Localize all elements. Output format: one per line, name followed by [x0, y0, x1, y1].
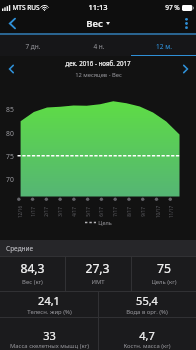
staticText: 4 н.	[93, 42, 105, 51]
staticText: ИМТ	[91, 278, 105, 286]
button[interactable]: 84,3	[0, 257, 65, 291]
button[interactable]: Previous period	[0, 56, 22, 82]
button[interactable]: More options	[176, 14, 196, 33]
staticText: Средние	[6, 244, 34, 253]
staticText: 85	[6, 105, 14, 114]
button[interactable]: 7 дн.	[0, 35, 66, 57]
staticText: 12 месяцев - Вес	[75, 71, 122, 79]
staticText: Цель (кг)	[151, 278, 177, 286]
staticText: дек. 2016 - нояб. 2017	[65, 59, 131, 67]
button[interactable]: Back	[0, 14, 24, 33]
staticText: 6/17	[98, 207, 104, 217]
staticText: 7/17	[112, 207, 118, 217]
staticText: 5/17	[85, 207, 91, 217]
staticText: 80	[6, 129, 14, 138]
staticText: 70	[6, 175, 14, 184]
staticText: Вес	[86, 17, 103, 30]
staticText: 11:13	[88, 2, 108, 12]
staticText: 55,4	[136, 293, 158, 308]
staticText: 10/17	[154, 205, 160, 218]
staticText: 9/17	[140, 207, 146, 217]
button[interactable]: 27,3	[65, 257, 130, 291]
staticText: 11/17	[167, 205, 173, 218]
staticText: 1/17	[30, 207, 36, 217]
button[interactable]: Next period	[174, 56, 196, 82]
staticText: 27,3	[85, 260, 110, 276]
staticText: 97 %	[165, 3, 180, 12]
staticText: 12 м.	[156, 42, 172, 51]
staticText: 24,1	[38, 293, 60, 308]
button[interactable]: 24,1	[0, 291, 98, 317]
staticText: Костн. масса (кг)	[123, 342, 171, 350]
staticText: 7 дн.	[25, 42, 41, 51]
staticText: Телесн. жир (%)	[27, 308, 72, 316]
staticText: 75	[157, 260, 171, 276]
button[interactable]: 55,4	[98, 291, 196, 317]
staticText: Масса скелетных мышц (кг)	[10, 342, 89, 350]
staticText: 4,7	[139, 328, 155, 343]
staticText: 3/17	[57, 207, 63, 217]
button[interactable]: Вес	[86, 17, 110, 30]
staticText: 33	[43, 328, 56, 343]
staticText: Вес (кг)	[22, 278, 43, 286]
button[interactable]: 4,7	[98, 317, 196, 350]
staticText: 8/17	[126, 207, 132, 217]
staticText: 84,3	[20, 260, 45, 276]
button[interactable]: 33	[0, 317, 98, 350]
staticText: 2/17	[43, 207, 49, 217]
staticText: MTS RUS	[12, 3, 40, 12]
staticText: 4/17	[71, 207, 77, 217]
staticText: Цель	[98, 219, 112, 226]
staticText: 12/16	[16, 205, 22, 218]
button[interactable]: 12 м.	[131, 35, 196, 57]
staticText: Вода в орг. (%)	[126, 308, 168, 316]
button[interactable]: 4 н.	[66, 35, 131, 57]
button[interactable]: 75	[131, 257, 196, 291]
staticText: 75	[6, 152, 14, 161]
